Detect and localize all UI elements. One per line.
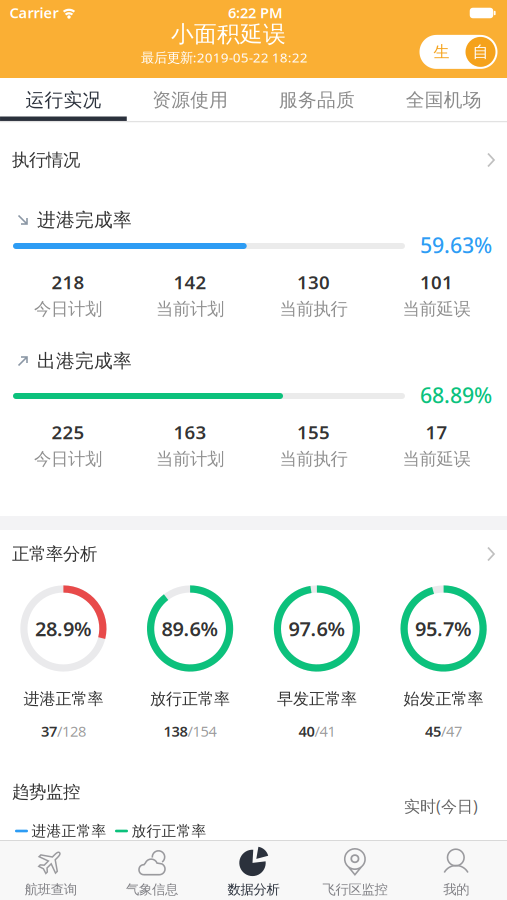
staticText: 放行正常率: [150, 689, 230, 709]
staticText: 放行正常率: [131, 822, 206, 840]
staticText: 航班查询: [25, 881, 77, 898]
button[interactable]: 实时(今日): [358, 795, 478, 817]
staticText: /47: [441, 721, 462, 741]
button[interactable]: 全国机场: [380, 78, 507, 122]
staticText: Carrier: [9, 3, 58, 22]
staticText: 59.63%: [420, 231, 492, 259]
staticText: 运行实况: [25, 88, 101, 111]
staticText: 28.9%: [35, 615, 92, 642]
staticText: 小面积延误: [171, 20, 286, 48]
staticText: 138: [164, 721, 188, 741]
staticText: 进港正常率: [23, 689, 103, 709]
staticText: 飞行区监控: [322, 881, 387, 898]
staticText: 155: [297, 420, 330, 444]
button[interactable]: 航班查询: [0, 840, 101, 900]
staticText: 气象信息: [126, 881, 178, 898]
staticText: 130: [297, 270, 330, 294]
button[interactable]: 资源使用: [127, 78, 254, 122]
staticText: 89.6%: [162, 615, 219, 642]
staticText: /41: [314, 721, 335, 741]
staticText: 97.6%: [288, 615, 345, 642]
staticText: 最后更新:2019-05-22 18:22: [141, 48, 308, 66]
staticText: 今日计划: [34, 448, 102, 470]
staticText: 当前延误: [402, 298, 470, 320]
staticText: 趋势监控: [12, 781, 80, 803]
staticText: /128: [57, 721, 86, 741]
staticText: 6:22 PM: [228, 3, 283, 22]
staticText: 实时(今日): [404, 795, 478, 817]
staticText: 正常率分析: [12, 543, 97, 565]
staticText: 早发正常率: [277, 689, 357, 709]
staticText: 资源使用: [152, 88, 228, 111]
staticText: 68.89%: [420, 381, 492, 409]
button[interactable]: 生: [419, 35, 497, 69]
staticText: 当前延误: [402, 448, 470, 470]
staticText: 当前计划: [156, 298, 224, 320]
staticText: 执行情况: [12, 149, 80, 171]
staticText: 225: [51, 420, 84, 444]
staticText: 218: [51, 270, 84, 294]
staticText: 当前计划: [156, 448, 224, 470]
staticText: 95.7%: [415, 615, 472, 642]
staticText: 45: [425, 721, 441, 741]
staticText: 163: [173, 420, 206, 444]
button[interactable]: 我的: [406, 840, 507, 900]
button[interactable]: 执行情况: [0, 138, 507, 182]
button[interactable]: 服务品质: [253, 78, 380, 122]
staticText: 17: [425, 420, 447, 444]
staticText: 142: [173, 270, 206, 294]
staticText: 40: [298, 721, 314, 741]
staticText: 当前执行: [279, 298, 347, 320]
staticText: 当前执行: [279, 448, 347, 470]
staticText: 我的: [443, 881, 469, 898]
button[interactable]: 气象信息: [101, 840, 203, 900]
staticText: 始发正常率: [404, 689, 484, 709]
staticText: 生: [433, 42, 449, 62]
staticText: 数据分析: [227, 881, 279, 898]
staticText: 出港完成率: [37, 349, 132, 372]
staticText: 进港正常率: [31, 822, 106, 840]
staticText: 全国机场: [406, 88, 482, 111]
staticText: 37: [41, 721, 57, 741]
button[interactable]: 运行实况: [0, 78, 127, 122]
button[interactable]: 飞行区监控: [304, 840, 406, 900]
staticText: 101: [420, 270, 453, 294]
staticText: 进港完成率: [37, 208, 132, 231]
staticText: 服务品质: [279, 88, 355, 111]
staticText: 今日计划: [34, 298, 102, 320]
button[interactable]: 正常率分析: [0, 532, 507, 576]
staticText: /154: [188, 721, 217, 741]
staticText: 自: [472, 42, 488, 62]
button[interactable]: 数据分析: [203, 840, 304, 900]
